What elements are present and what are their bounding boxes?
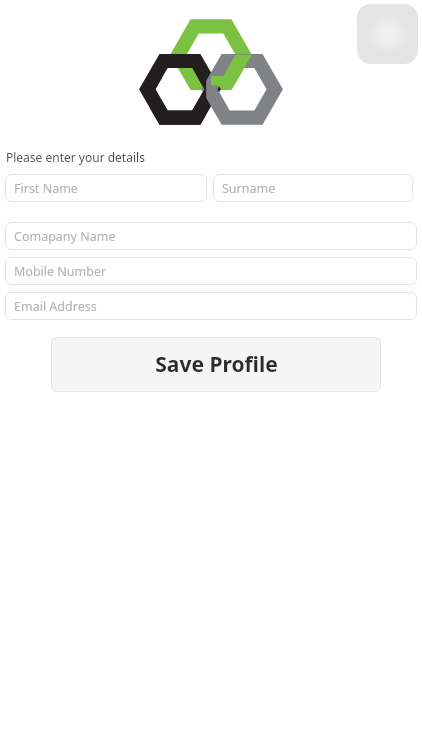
button[interactable]: Email Address [5, 292, 417, 320]
button[interactable]: First Name [5, 174, 207, 202]
button[interactable]: Save Profile [51, 337, 381, 392]
button[interactable]: Mobile Number [5, 257, 417, 285]
staticText: Email Address [14, 298, 97, 315]
staticText: Save Profile [155, 350, 278, 379]
staticText: Please enter your details [6, 149, 145, 165]
staticText: Comapany Name [14, 228, 116, 245]
button[interactable]: Profile photo [357, 4, 418, 64]
staticText: Surname [222, 180, 276, 197]
button[interactable]: Comapany Name [5, 222, 417, 250]
staticText: First Name [14, 180, 78, 197]
staticText: Mobile Number [14, 263, 107, 280]
button[interactable]: Surname [213, 174, 413, 202]
